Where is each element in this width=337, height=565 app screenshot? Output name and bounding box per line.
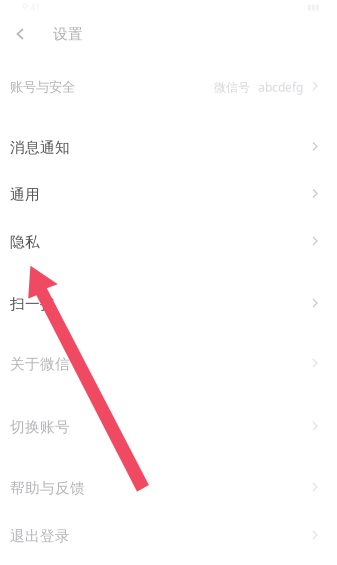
button[interactable]: 账号与安全 bbox=[0, 63, 337, 111]
staticText: 帮助与反馈 bbox=[10, 479, 85, 497]
button[interactable]: 扫一扫 bbox=[0, 280, 337, 328]
button[interactable]: 消息通知 bbox=[0, 124, 337, 171]
staticText: 通用 bbox=[10, 185, 40, 203]
staticText: 9:41 bbox=[22, 1, 40, 13]
button[interactable]: 切换账号 bbox=[0, 403, 337, 451]
staticText: 扫一扫 bbox=[10, 295, 55, 313]
button[interactable]: 通用 bbox=[0, 171, 337, 218]
staticText: 微信号 abcdefg bbox=[214, 79, 303, 95]
staticText: 关于微信 bbox=[10, 355, 70, 373]
staticText: 退出登录 bbox=[10, 527, 70, 545]
staticText: ▮▮▮ bbox=[307, 2, 319, 12]
button[interactable]: Back bbox=[0, 14, 31, 54]
button[interactable]: 隐私 bbox=[0, 218, 337, 266]
staticText: 账号与安全 bbox=[10, 79, 75, 95]
button[interactable]: 帮助与反馈 bbox=[0, 464, 337, 512]
button[interactable]: 关于微信 bbox=[0, 340, 337, 388]
staticText: 设置 bbox=[53, 25, 83, 43]
staticText: 消息通知 bbox=[10, 138, 70, 156]
button[interactable]: 退出登录 bbox=[0, 512, 337, 560]
staticText: 切换账号 bbox=[10, 418, 70, 436]
staticText: 隐私 bbox=[10, 233, 40, 251]
